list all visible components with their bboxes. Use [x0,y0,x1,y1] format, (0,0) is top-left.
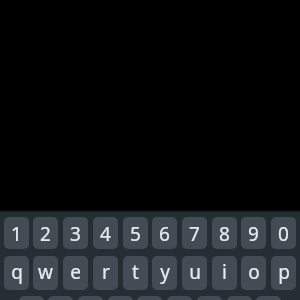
staticText: 8 [219,221,230,247]
button[interactable]: Key 2 [33,217,58,249]
staticText: 9 [248,221,259,247]
button[interactable]: Key s [48,296,73,300]
button[interactable]: Key u [182,256,207,290]
button[interactable]: Key g [137,296,162,300]
button[interactable]: Key j [197,296,222,300]
button[interactable]: Key 3 [63,217,88,249]
button[interactable]: Key p [271,256,296,290]
button[interactable]: Key t [123,256,148,290]
staticText: o [248,259,260,285]
button[interactable]: Key 8 [212,217,237,249]
staticText: 0 [278,221,289,247]
button[interactable]: Key 4 [93,217,118,249]
button[interactable]: Key i [212,256,237,290]
button[interactable]: Key y [152,256,177,290]
staticText: 2 [40,221,51,247]
staticText: 5 [130,221,141,247]
button[interactable]: Key r [93,256,118,290]
staticText: t [132,259,139,285]
staticText: q [11,259,23,285]
staticText: u [189,259,201,285]
button[interactable]: Key 6 [152,217,177,249]
staticText: 1 [11,221,22,247]
button[interactable]: Key 5 [123,217,148,249]
button[interactable]: Key q [4,256,29,290]
button[interactable]: Key 0 [271,217,296,249]
staticText: e [70,259,81,285]
button[interactable]: Key 7 [182,217,207,249]
staticText: r [102,259,110,285]
staticText: 4 [100,221,111,247]
button[interactable]: Key l [256,296,281,300]
staticText: w [38,259,53,285]
button[interactable]: Key f [108,296,133,300]
button[interactable]: Key k [227,296,252,300]
button[interactable]: Key d [78,296,103,300]
button[interactable]: Key o [241,256,266,290]
staticText: 6 [159,221,170,247]
staticText: p [278,259,290,285]
button[interactable]: Key h [167,296,192,300]
staticText: 3 [70,221,81,247]
button[interactable]: Key e [63,256,88,290]
button[interactable]: Key w [33,256,58,290]
staticText: i [222,259,227,285]
button[interactable]: Key 9 [241,217,266,249]
staticText: y [160,259,170,285]
staticText: 7 [189,221,200,247]
button[interactable]: Key a [19,296,44,300]
button[interactable]: Key 1 [4,217,29,249]
